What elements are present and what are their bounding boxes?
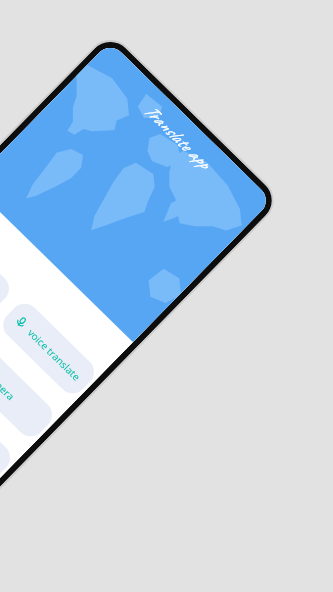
- button[interactable]: voice translate: [0, 297, 100, 399]
- staticText: Translate app: [138, 99, 215, 174]
- button[interactable]: text translate: [0, 215, 15, 316]
- staticText: camera: [0, 368, 18, 403]
- button[interactable]: favourites: [0, 383, 16, 485]
- staticText: voice translate: [25, 326, 84, 384]
- button[interactable]: camera: [0, 340, 58, 442]
